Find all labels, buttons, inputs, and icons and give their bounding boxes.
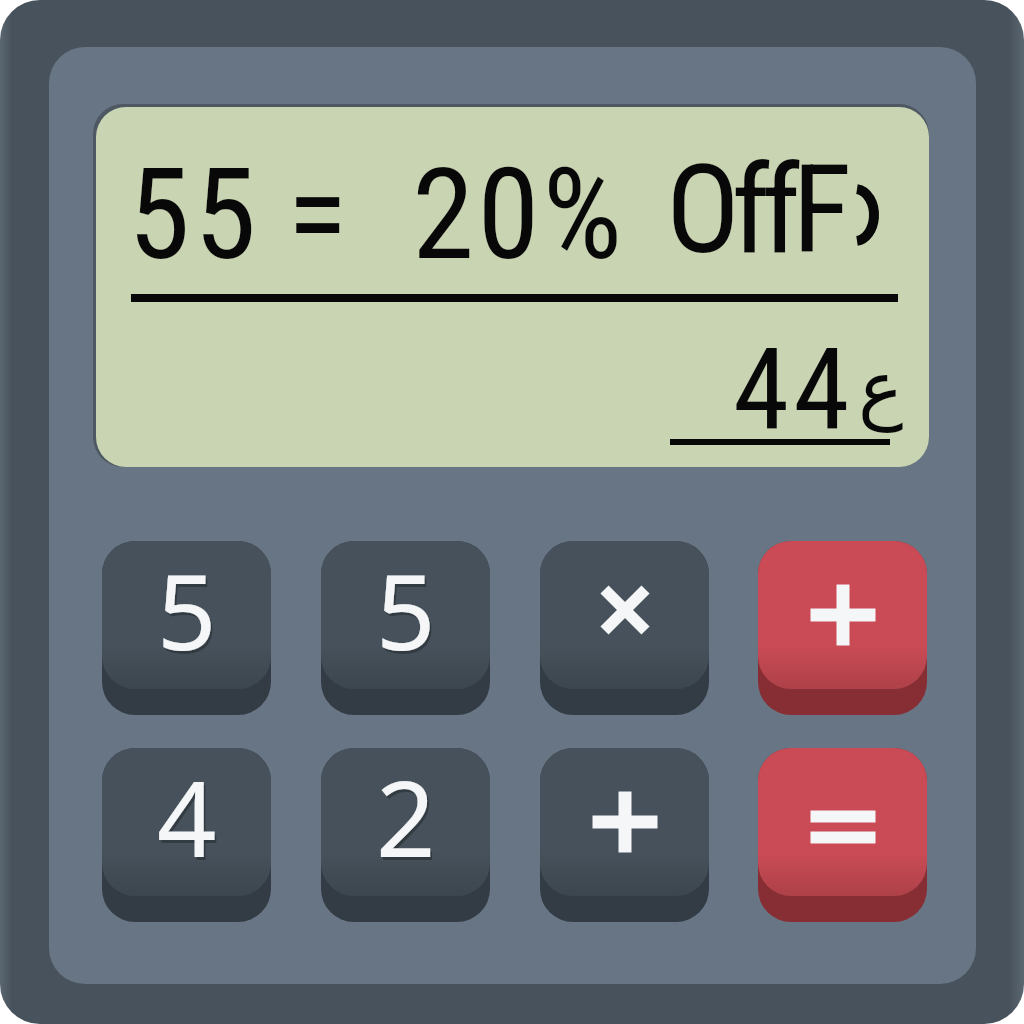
button[interactable]: Two (321, 748, 490, 922)
button[interactable]: Multiply (540, 541, 709, 715)
button[interactable]: Equals (758, 748, 927, 922)
staticText: 2 (376, 748, 436, 888)
button[interactable]: Five (321, 541, 490, 715)
staticText: 4 (159, 749, 219, 891)
button[interactable]: Add (540, 748, 709, 922)
button[interactable]: Add (758, 541, 927, 715)
staticText: ع (858, 343, 904, 431)
staticText: 55 (128, 141, 261, 289)
staticText: = (287, 141, 348, 289)
staticText: 20% (412, 141, 626, 289)
staticText: 5 (378, 542, 438, 684)
staticText: OffF (666, 138, 843, 282)
staticText: 5 (159, 542, 219, 684)
button[interactable]: Five (102, 541, 271, 715)
button[interactable]: Four (102, 748, 271, 922)
staticText: 5 (376, 541, 436, 681)
staticText: 44 (733, 323, 854, 457)
staticText: 5 (157, 541, 217, 681)
staticText: 2 (378, 749, 438, 891)
staticText: 4 (157, 748, 217, 888)
